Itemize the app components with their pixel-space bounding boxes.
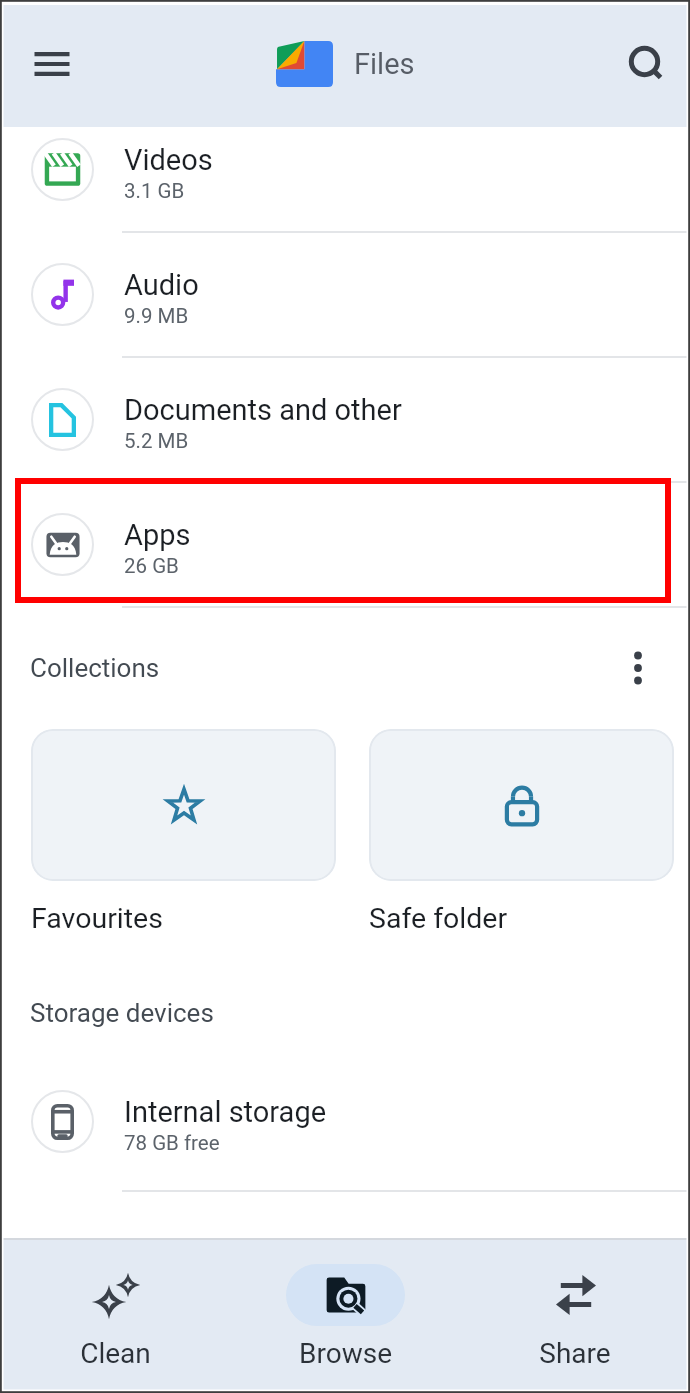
- staticText: Favourites: [31, 902, 163, 935]
- button[interactable]: Documents and other: [0, 358, 690, 481]
- staticText: 78 GB free: [124, 1131, 220, 1155]
- button[interactable]: Internal storage: [0, 1053, 690, 1190]
- button[interactable]: Browse: [230, 1240, 460, 1393]
- button[interactable]: Audio: [0, 233, 690, 356]
- button[interactable]: [31, 729, 336, 881]
- staticText: 9.9 MB: [124, 304, 189, 328]
- staticText: Collections: [30, 653, 160, 683]
- button[interactable]: Clean: [0, 1240, 230, 1393]
- button[interactable]: [369, 729, 674, 881]
- staticText: 26 GB: [124, 554, 179, 578]
- staticText: Storage devices: [30, 998, 214, 1028]
- button[interactable]: Search: [614, 31, 680, 97]
- staticText: Files: [354, 47, 415, 81]
- staticText: Clean: [80, 1337, 151, 1370]
- staticText: Safe folder: [369, 902, 508, 935]
- button[interactable]: Share: [460, 1240, 690, 1393]
- staticText: 3.1 GB: [124, 179, 185, 203]
- staticText: Apps: [124, 518, 191, 552]
- staticText: Documents and other: [124, 393, 402, 427]
- staticText: Internal storage: [124, 1095, 327, 1129]
- button[interactable]: Videos: [0, 108, 690, 231]
- staticText: 5.2 MB: [124, 429, 189, 453]
- button[interactable]: More options: [612, 648, 664, 688]
- button[interactable]: Apps: [0, 483, 690, 606]
- button[interactable]: Navigation menu: [19, 31, 85, 97]
- staticText: Audio: [124, 268, 199, 302]
- staticText: Browse: [299, 1337, 392, 1370]
- staticText: Videos: [124, 143, 213, 177]
- staticText: Share: [539, 1337, 611, 1370]
